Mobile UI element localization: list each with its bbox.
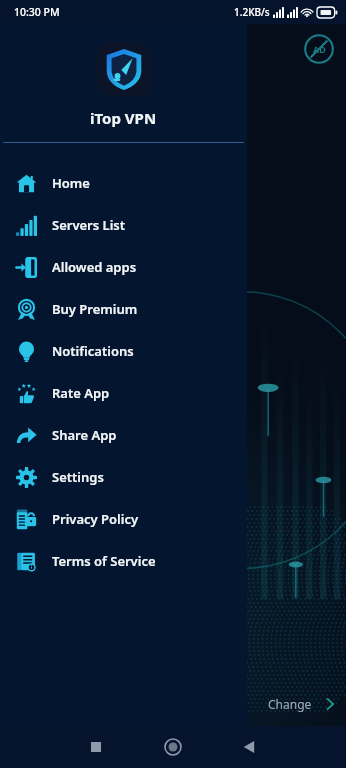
staticText: Settings [52,468,104,486]
button[interactable]: Servers List [0,204,247,246]
button[interactable]: Buy Premium [0,288,247,330]
staticText: Rate App [52,384,110,402]
staticText: Terms of Service [52,552,156,570]
button[interactable]: Share App [0,414,247,456]
button[interactable]: Change [268,696,338,712]
button[interactable]: Home [155,729,191,765]
staticText: Change [268,696,312,712]
button[interactable]: Rate App [0,372,247,414]
button[interactable]: No ads [304,34,334,64]
staticText: Share App [52,426,117,444]
staticText: Buy Premium [52,300,138,318]
staticText: Home [52,174,90,192]
button[interactable]: Home [0,162,247,204]
staticText: iTop VPN [90,108,157,128]
staticText: AD [313,43,326,55]
button[interactable]: Settings [0,456,247,498]
staticText: Privacy Policy [52,510,139,528]
button[interactable]: Terms of Service [0,540,247,582]
button[interactable]: Notifications [0,330,247,372]
button[interactable]: Recent apps [78,729,114,765]
staticText: Allowed apps [52,258,137,276]
staticText: Notifications [52,342,134,360]
button[interactable]: Back [232,729,268,765]
staticText: 10:30 PM [14,5,60,19]
staticText: Servers List [52,216,126,234]
button[interactable]: Privacy Policy [0,498,247,540]
button[interactable]: Allowed apps [0,246,247,288]
staticText: 1.2KB/s [234,5,270,19]
